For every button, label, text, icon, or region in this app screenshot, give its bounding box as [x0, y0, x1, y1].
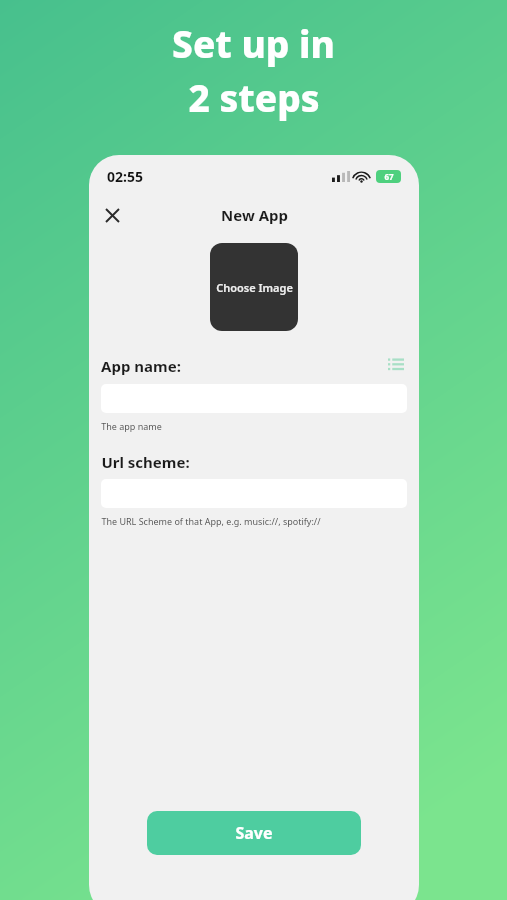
staticText: Set up in	[172, 18, 335, 68]
staticText: New App	[221, 205, 288, 225]
button[interactable]: Save	[147, 811, 361, 855]
button[interactable]: Close	[97, 200, 127, 230]
button[interactable]: Choose Image	[210, 243, 298, 331]
staticText: Choose Image	[216, 280, 293, 295]
staticText: The app name	[101, 420, 162, 432]
staticText: The URL Scheme of that App, e.g. music:/…	[101, 515, 321, 527]
staticText: Url scheme:	[101, 452, 190, 472]
staticText: 2 steps	[188, 72, 320, 122]
staticText: App name:	[101, 356, 181, 376]
staticText: 67	[384, 171, 394, 182]
button[interactable]: Suggestions list	[385, 355, 407, 377]
staticText: 02:55	[107, 167, 143, 186]
staticText: Save	[235, 822, 273, 844]
